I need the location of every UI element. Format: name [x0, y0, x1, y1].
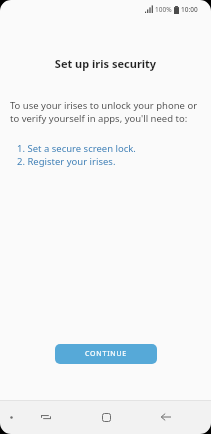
- button[interactable]: [136, 400, 196, 434]
- staticText: 1. Set a secure screen lock.: [17, 142, 136, 155]
- button[interactable]: [16, 400, 76, 434]
- button[interactable]: 2. Register your irises.: [17, 155, 116, 168]
- staticText: 2. Register your irises.: [17, 155, 116, 168]
- button[interactable]: CONTINUE: [55, 344, 157, 364]
- staticText: Set up iris security: [0, 56, 211, 71]
- staticText: To use your irises to unlock your phone …: [10, 99, 198, 112]
- button[interactable]: [76, 400, 136, 434]
- staticText: 100%: [155, 5, 172, 14]
- button[interactable]: 1. Set a secure screen lock.: [17, 142, 136, 155]
- staticText: to verify yourself in apps, you'll need …: [10, 112, 188, 125]
- staticText: CONTINUE: [85, 349, 128, 359]
- staticText: 10:00: [181, 5, 198, 14]
